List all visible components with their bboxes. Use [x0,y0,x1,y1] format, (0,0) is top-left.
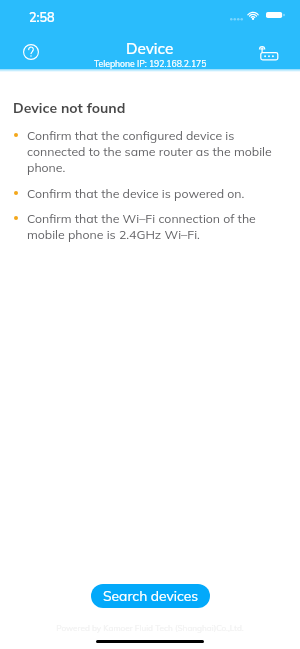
staticText: Telephone IP: 192.168.2.175 [94,60,207,69]
staticText: 2:58 [29,11,55,25]
staticText: Confirm that the configured device is co… [27,127,282,175]
staticText: Confirm that the Wi–Fi connection of the… [27,210,282,242]
button[interactable]: Search devices [91,584,210,608]
staticText: Device [126,39,174,58]
staticText: Device not found [13,99,126,116]
staticText: Search devices [103,589,199,604]
staticText: Confirm that the device is powered on. [27,185,245,201]
staticText: Powered by Kamoer Fluid Tech (Shanghai)C… [56,623,244,633]
button[interactable]: Help [19,40,43,64]
button[interactable]: Router settings [256,37,282,63]
